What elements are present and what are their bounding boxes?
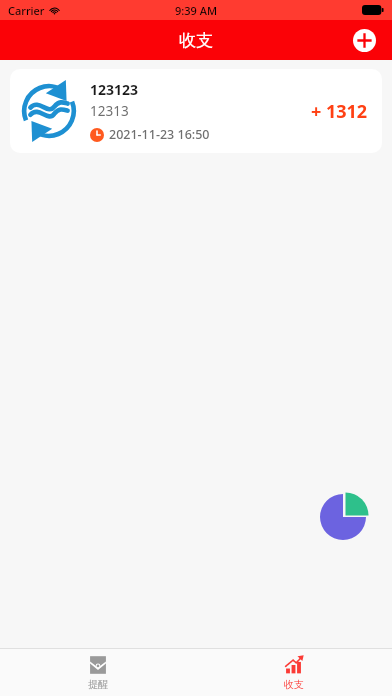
button[interactable]: 提醒 (0, 649, 196, 696)
staticText: 12313 (90, 102, 129, 120)
staticText: 收支 (179, 30, 213, 51)
staticText: 123123 (90, 80, 139, 99)
staticText: 9:39 AM (175, 3, 218, 18)
staticText: 提醒 (88, 678, 108, 691)
button[interactable]: 收支 (196, 649, 392, 696)
staticText: + 1312 (311, 99, 368, 124)
button[interactable]: Add (346, 22, 382, 58)
button[interactable]: 123123 (10, 69, 382, 153)
staticText: 收支 (284, 678, 304, 691)
staticText: 2021-11-23 16:50 (109, 126, 210, 143)
staticText: Carrier (8, 3, 45, 18)
